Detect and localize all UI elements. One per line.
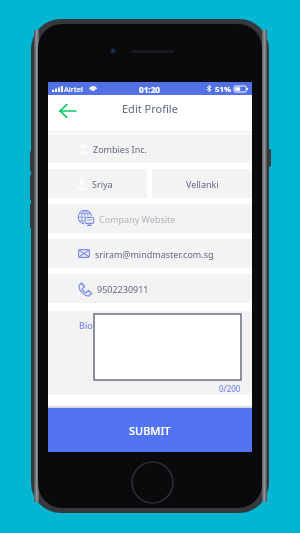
button[interactable]: Zombies Inc. bbox=[48, 134, 252, 163]
staticText: Bio bbox=[79, 319, 93, 331]
button[interactable]: Company Website bbox=[48, 204, 252, 233]
staticText: Airtel bbox=[64, 84, 83, 94]
staticText: 01:20 bbox=[139, 84, 161, 95]
staticText: Vellanki bbox=[186, 178, 219, 190]
button[interactable]: Sriya bbox=[48, 169, 147, 198]
staticText: Sriya bbox=[92, 178, 113, 190]
button[interactable]: sriram@mindmaster.com.sg bbox=[48, 239, 252, 268]
staticText: Edit Profile bbox=[122, 101, 178, 116]
staticText: Zombies Inc. bbox=[93, 143, 147, 155]
staticText: 9502230911 bbox=[97, 283, 149, 295]
button[interactable]: Back bbox=[56, 100, 78, 122]
button[interactable] bbox=[94, 314, 241, 380]
staticText: Company Website bbox=[99, 213, 176, 225]
staticText: 0/200 bbox=[219, 383, 241, 394]
button[interactable]: 9502230911 bbox=[48, 274, 252, 303]
button[interactable]: Vellanki bbox=[152, 169, 252, 198]
button[interactable]: SUBMIT bbox=[48, 408, 252, 452]
staticText: sriram@mindmaster.com.sg bbox=[95, 248, 214, 260]
staticText: 51% bbox=[215, 84, 231, 95]
staticText: SUBMIT bbox=[129, 423, 171, 438]
